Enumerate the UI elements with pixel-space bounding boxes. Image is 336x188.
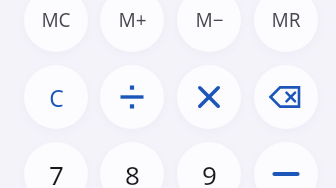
staticText: 9 [202, 157, 217, 188]
button[interactable]: Backspace [254, 65, 318, 129]
staticText: C [49, 82, 64, 113]
staticText: MC [41, 7, 71, 33]
button[interactable]: M+ [100, 0, 164, 52]
button[interactable]: Multiply [177, 65, 241, 129]
button[interactable]: MR [254, 0, 318, 52]
staticText: 8 [125, 157, 140, 188]
staticText: MR [271, 7, 301, 33]
button[interactable]: Divide [100, 65, 164, 129]
button[interactable]: Minus [254, 142, 318, 188]
button[interactable]: MC [24, 0, 88, 52]
button[interactable]: M− [177, 0, 241, 52]
button[interactable]: 8 [100, 142, 164, 188]
button[interactable]: 7 [24, 142, 88, 188]
staticText: M+ [118, 7, 147, 33]
staticText: 7 [49, 157, 64, 188]
button[interactable]: 9 [177, 142, 241, 188]
button[interactable]: C [24, 65, 88, 129]
staticText: M− [195, 7, 224, 33]
